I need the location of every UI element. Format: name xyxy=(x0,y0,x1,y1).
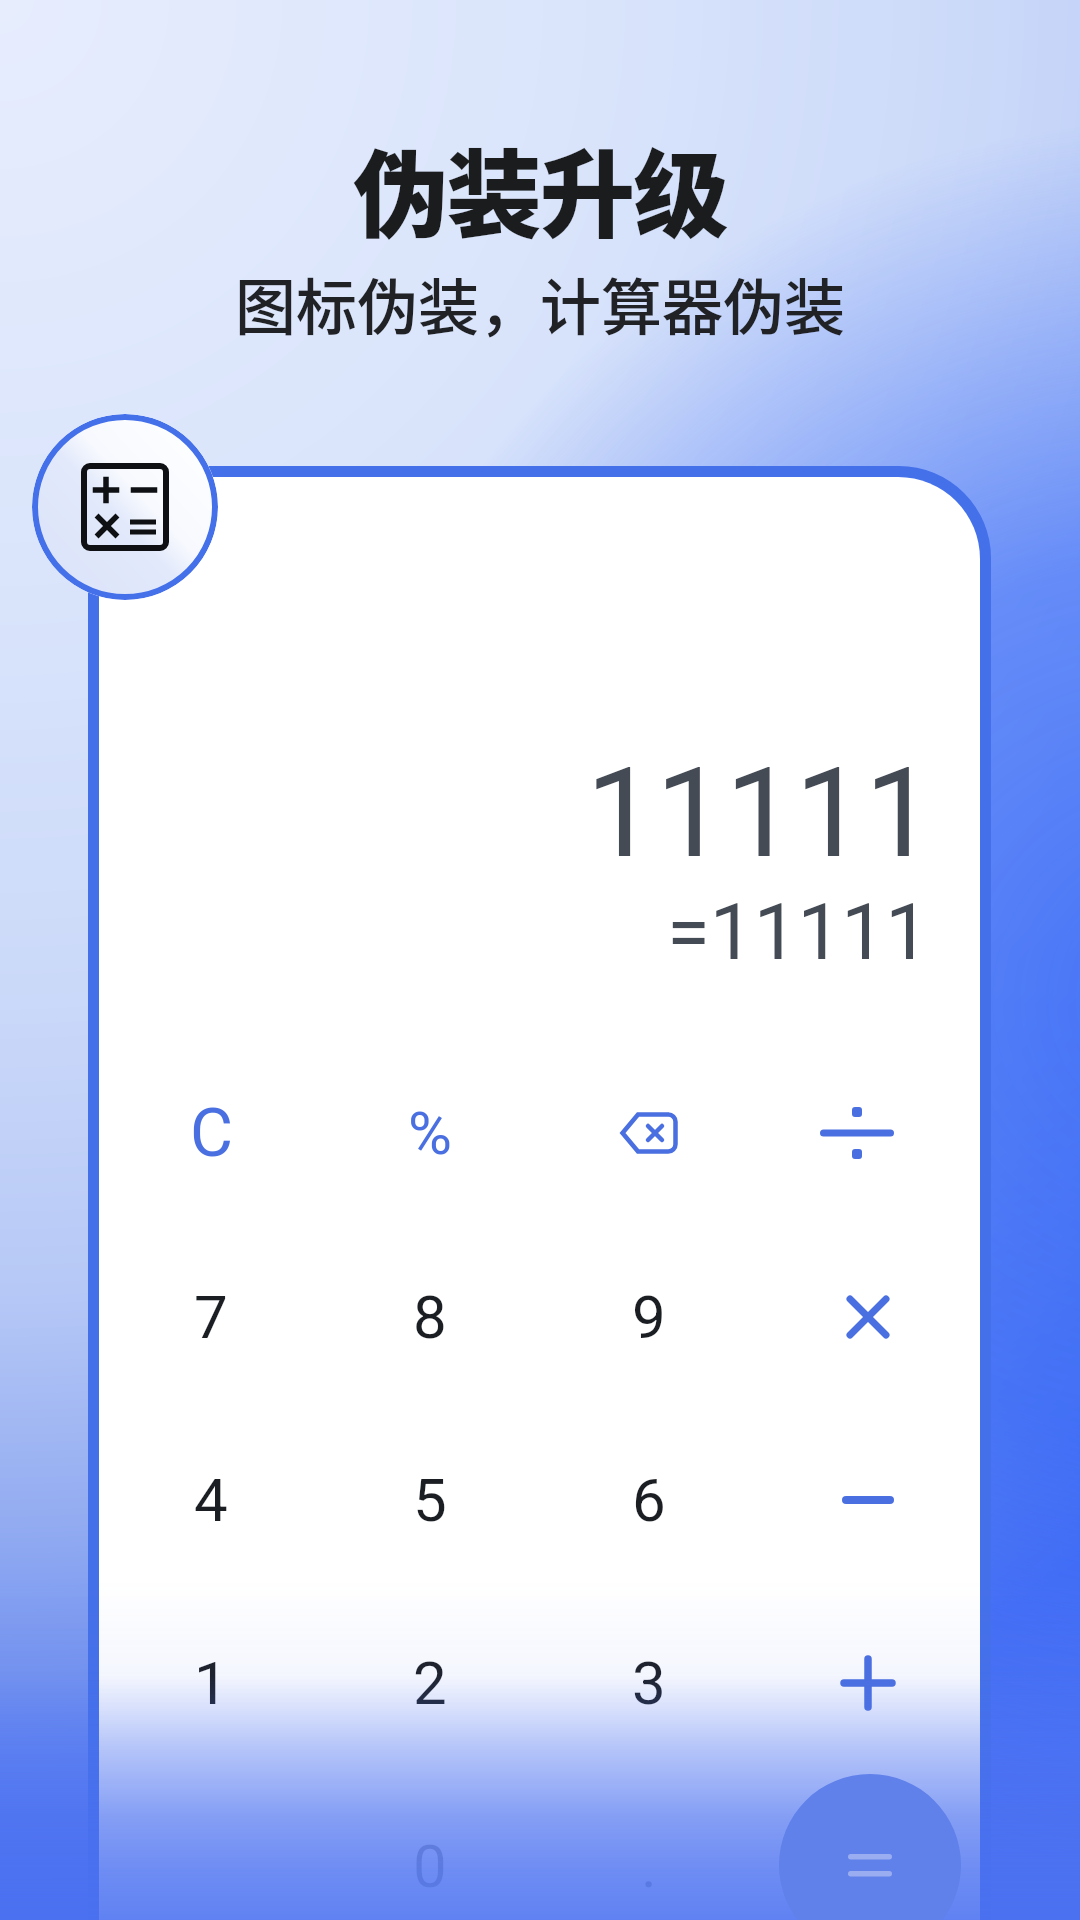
button[interactable]: 0 xyxy=(335,1798,525,1920)
button[interactable] xyxy=(773,1615,963,1751)
staticText: . xyxy=(641,1831,657,1901)
staticText: 8 xyxy=(413,1282,447,1352)
button[interactable] xyxy=(779,1774,961,1920)
staticText: 1 xyxy=(194,1648,228,1718)
button[interactable]: . xyxy=(554,1798,744,1920)
staticText: C xyxy=(190,1095,233,1172)
staticText: 伪装升级 xyxy=(353,120,728,250)
button[interactable]: 4 xyxy=(116,1432,306,1568)
staticText: 6 xyxy=(632,1465,666,1535)
button[interactable]: 9 xyxy=(554,1249,744,1385)
staticText: 7 xyxy=(194,1282,228,1352)
button[interactable]: 8 xyxy=(335,1249,525,1385)
button[interactable]: 5 xyxy=(335,1432,525,1568)
staticText: 图标伪装，计算器伪装 xyxy=(235,259,846,347)
staticText: =11111 xyxy=(667,887,929,967)
staticText: 4 xyxy=(194,1465,228,1535)
button[interactable]: % xyxy=(335,1065,525,1201)
button[interactable] xyxy=(773,1249,963,1385)
staticText: 9 xyxy=(632,1282,666,1352)
staticText: 3 xyxy=(632,1648,666,1718)
staticText: 5 xyxy=(413,1465,447,1535)
button[interactable]: 1 xyxy=(116,1615,306,1751)
button[interactable]: 3 xyxy=(554,1615,744,1751)
staticText: 11111 xyxy=(586,741,935,867)
button[interactable]: C xyxy=(116,1065,306,1201)
button[interactable]: 2 xyxy=(335,1615,525,1751)
staticText: 0 xyxy=(413,1831,447,1901)
button[interactable] xyxy=(762,1065,952,1201)
staticText: 2 xyxy=(413,1648,447,1718)
button[interactable] xyxy=(773,1432,963,1568)
button[interactable] xyxy=(554,1065,744,1201)
button[interactable]: 6 xyxy=(554,1432,744,1568)
button[interactable]: 7 xyxy=(116,1249,306,1385)
staticText: % xyxy=(408,1098,452,1168)
